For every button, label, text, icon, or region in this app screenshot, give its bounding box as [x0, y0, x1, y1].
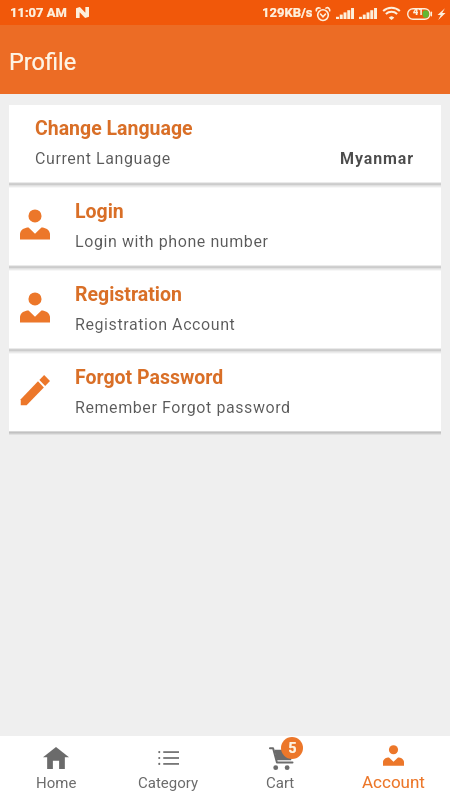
- staticText: Login with phone number: [75, 232, 269, 251]
- staticText: Current Language: [35, 149, 171, 168]
- staticText: Login: [75, 200, 124, 223]
- staticText: Change Language: [35, 117, 193, 140]
- button[interactable]: Registration: [9, 271, 441, 348]
- button[interactable]: Forgot Password: [9, 354, 441, 431]
- button[interactable]: Login: [9, 188, 441, 265]
- button[interactable]: Home: [0, 736, 112, 800]
- staticText: 11:07 AM: [10, 5, 67, 20]
- staticText: Category: [138, 774, 199, 792]
- staticText: Myanmar: [340, 149, 415, 168]
- staticText: 41: [413, 7, 424, 18]
- staticText: Registration Account: [75, 315, 236, 334]
- staticText: 129KB/s: [262, 5, 313, 20]
- button[interactable]: Change Language: [9, 105, 441, 182]
- staticText: Home: [36, 774, 77, 792]
- button[interactable]: Account: [337, 736, 450, 800]
- staticText: 5: [288, 740, 297, 757]
- staticText: Remember Forgot password: [75, 398, 291, 417]
- staticText: Forgot Password: [75, 366, 224, 389]
- button[interactable]: Category: [112, 736, 224, 800]
- button[interactable]: Cart: [224, 736, 337, 800]
- staticText: Profile: [9, 48, 77, 76]
- staticText: Account: [362, 772, 425, 792]
- staticText: Registration: [75, 283, 182, 306]
- staticText: Cart: [266, 774, 295, 792]
